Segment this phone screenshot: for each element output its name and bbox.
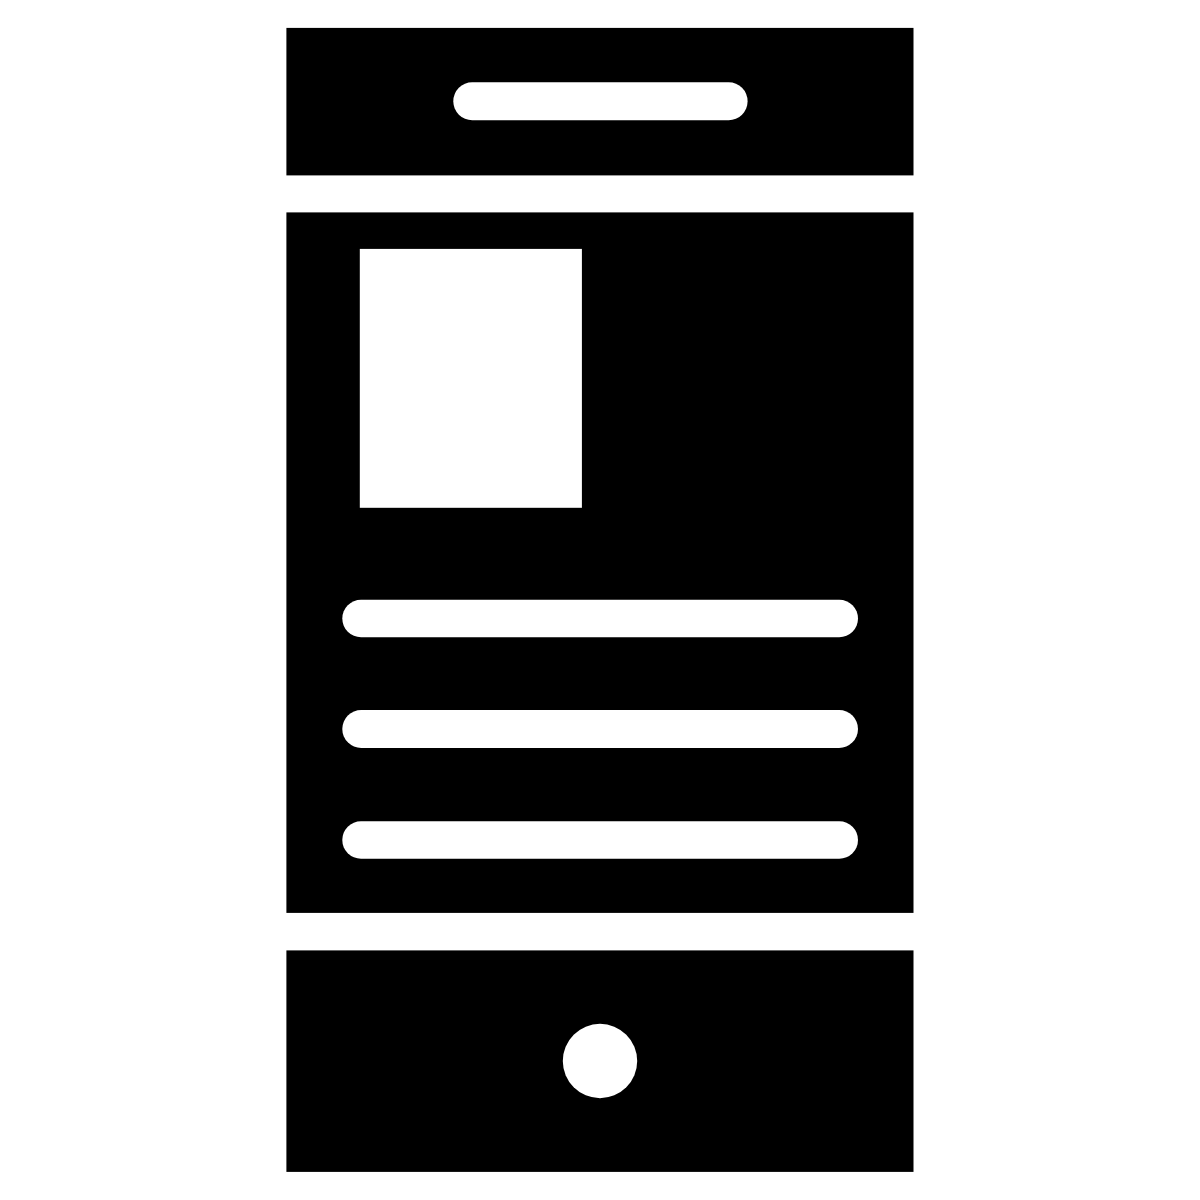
button[interactable]: Featured image [360, 249, 582, 508]
other: Top app bar [286, 28, 914, 176]
button[interactable]: List item two [342, 710, 858, 748]
button[interactable]: Home [562, 1023, 638, 1099]
button[interactable]: List item one [342, 600, 858, 638]
other: Bottom navigation [286, 950, 914, 1172]
button[interactable]: Screen title [453, 82, 747, 120]
button[interactable]: List item three [342, 821, 858, 859]
